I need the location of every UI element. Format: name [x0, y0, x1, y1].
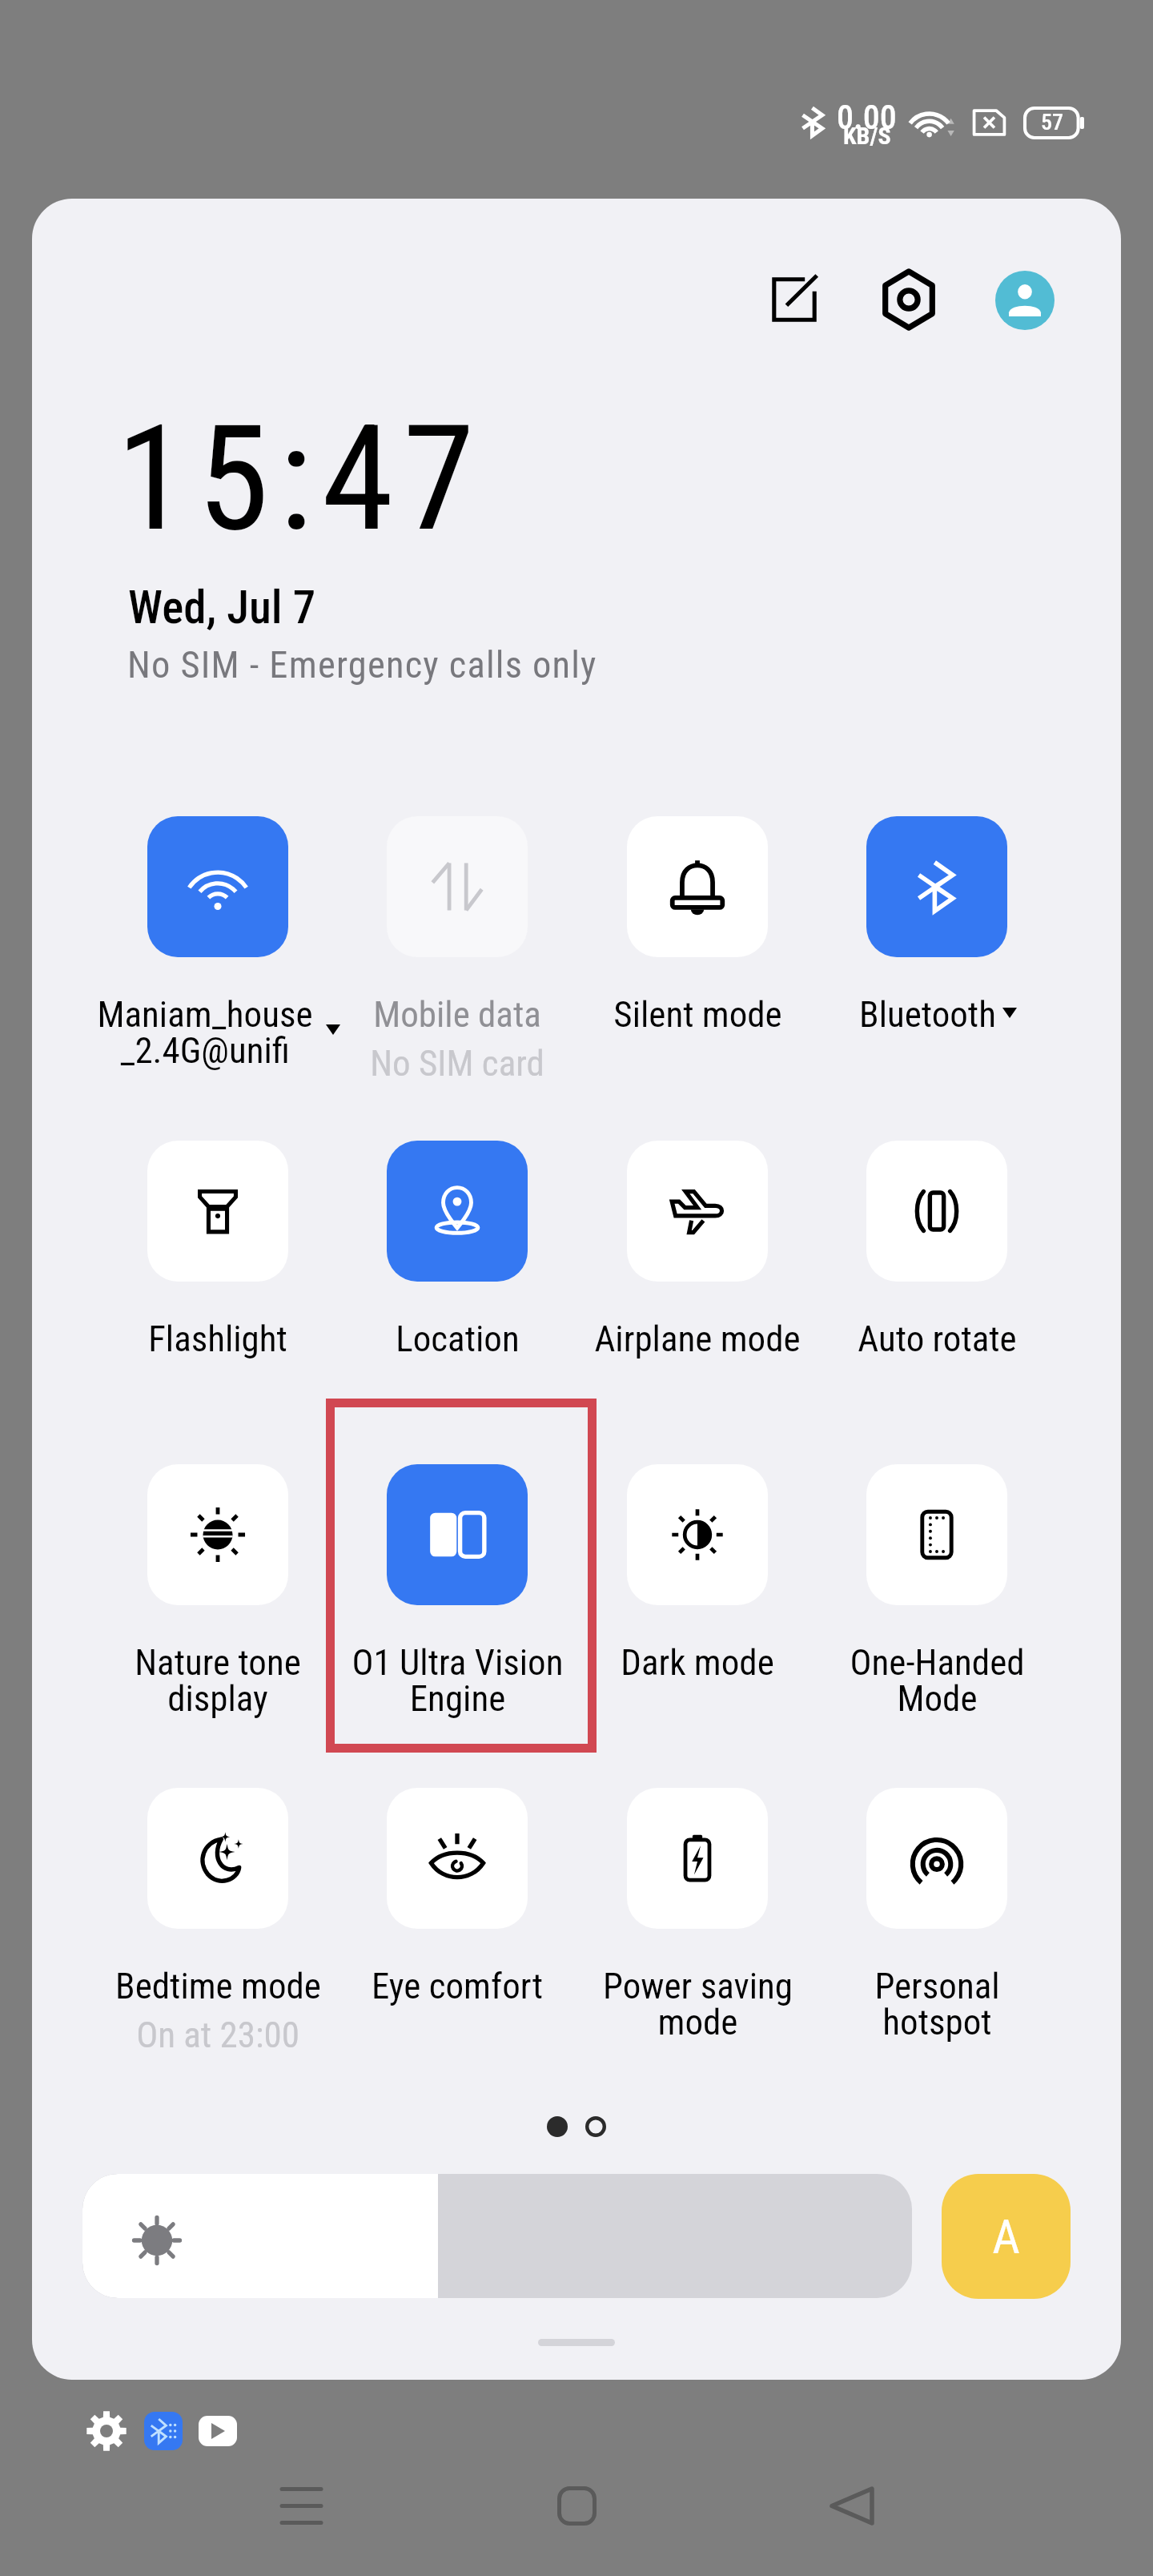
button[interactable]: O1 Ultra Vision Engine	[387, 1464, 528, 1605]
staticText: Location	[396, 1318, 520, 1360]
button[interactable]: Personal hotspot	[866, 1788, 1007, 1929]
button[interactable]: Settings shortcut	[86, 2410, 127, 2452]
button[interactable]: Wi-Fi	[147, 816, 288, 957]
staticText: Dark mode	[621, 1641, 774, 1684]
staticText: Mobile data	[373, 993, 541, 1036]
staticText: O1 Ultra Vision Engine	[352, 1641, 564, 1720]
staticText: 15:47	[116, 393, 484, 564]
button[interactable]: Settings	[861, 252, 957, 348]
staticText: Eye comfort	[372, 1965, 543, 2007]
staticText: Personal hotspot	[874, 1965, 1000, 2043]
button[interactable]: One-Handed Mode	[866, 1464, 1007, 1605]
staticText: Silent mode	[613, 993, 782, 1036]
button[interactable]: Location	[387, 1141, 528, 1282]
button[interactable]: Bedtime mode	[147, 1788, 288, 1929]
staticText: On at 23:00	[136, 2014, 299, 2056]
button[interactable]: Dark mode	[627, 1464, 768, 1605]
staticText: One-Handed Mode	[850, 1641, 1025, 1720]
button[interactable]: Automatic brightness	[942, 2174, 1071, 2299]
button[interactable]: Back	[804, 2457, 900, 2554]
button[interactable]: Eye comfort	[387, 1788, 528, 1929]
staticText: Nature tone display	[135, 1641, 301, 1720]
button[interactable]: Home	[528, 2457, 625, 2554]
button[interactable]: Silent mode	[627, 816, 768, 957]
staticText: Bedtime mode	[115, 1965, 321, 2007]
button[interactable]: Auto rotate	[866, 1141, 1007, 1282]
button[interactable]: Flashlight	[147, 1141, 288, 1282]
button[interactable]: Edit	[746, 252, 842, 348]
staticText: Auto rotate	[858, 1318, 1017, 1360]
button[interactable]: Mobile data	[387, 816, 528, 957]
staticText: Maniam_house _2.4G@unifi	[97, 993, 313, 1072]
button[interactable]: Nature tone display	[147, 1464, 288, 1605]
staticText: Airplane mode	[594, 1318, 801, 1360]
button[interactable]: Power saving mode	[627, 1788, 768, 1929]
button[interactable]: Bluetooth shortcut	[144, 2412, 183, 2450]
staticText: 0.00	[837, 98, 897, 137]
button[interactable]: User account	[977, 252, 1073, 348]
staticText: Flashlight	[148, 1318, 287, 1360]
staticText: A	[992, 2208, 1020, 2264]
button[interactable]: Bluetooth	[866, 816, 1007, 957]
staticText: Power saving mode	[603, 1965, 793, 2043]
staticText: 57	[1041, 109, 1063, 135]
staticText: No SIM card	[370, 1042, 544, 1085]
staticText: KB/S	[843, 122, 891, 150]
button[interactable]: Airplane mode	[627, 1141, 768, 1282]
staticText: No SIM - Emergency calls only	[127, 643, 597, 686]
button[interactable]: Brightness slider	[82, 2174, 912, 2298]
button[interactable]: YouTube shortcut	[199, 2416, 237, 2446]
button[interactable]: Recent apps	[253, 2457, 349, 2554]
staticText: Bluetooth	[859, 993, 996, 1036]
staticText: Wed, Jul 7	[128, 581, 316, 634]
